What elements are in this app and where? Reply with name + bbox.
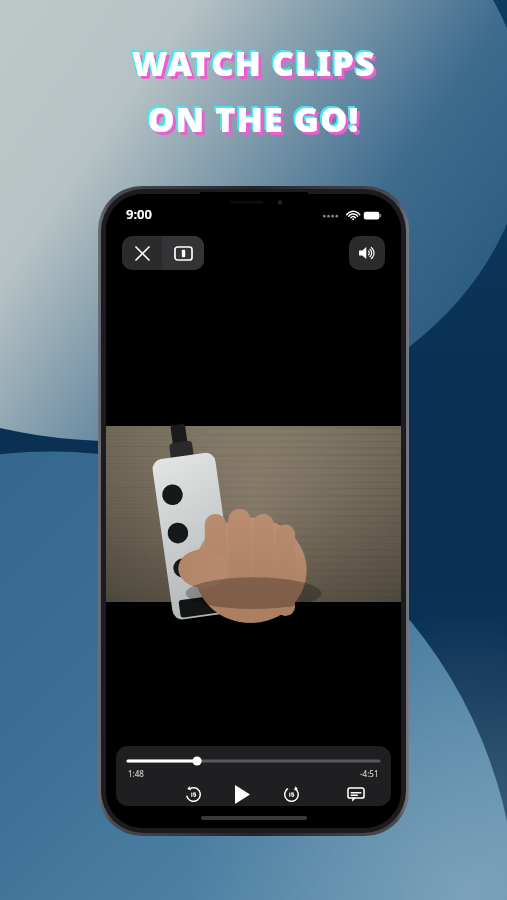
staticText: ON THE GO! — [145, 94, 358, 140]
button[interactable] — [128, 755, 379, 767]
button[interactable]: Forward 15 seconds — [278, 783, 304, 806]
button[interactable] — [106, 426, 401, 602]
staticText: WATCH CLIPS — [130, 38, 374, 84]
staticText: WATCH CLIPS — [132, 40, 376, 86]
button[interactable]: Play — [227, 783, 257, 806]
staticText: ON THE GO! — [147, 96, 360, 142]
staticText: ON THE GO! — [150, 99, 363, 145]
staticText: 1:48 — [128, 768, 144, 779]
button[interactable]: Subtitles — [343, 783, 369, 806]
button[interactable]: Volume — [349, 236, 385, 270]
button[interactable]: Close — [122, 236, 162, 270]
button[interactable]: Picture in picture — [162, 236, 204, 270]
staticText: 9:00 — [126, 205, 152, 223]
staticText: -4:51 — [360, 768, 379, 779]
button[interactable]: Rewind 15 seconds — [180, 783, 206, 806]
staticText: WATCH CLIPS — [135, 43, 379, 89]
